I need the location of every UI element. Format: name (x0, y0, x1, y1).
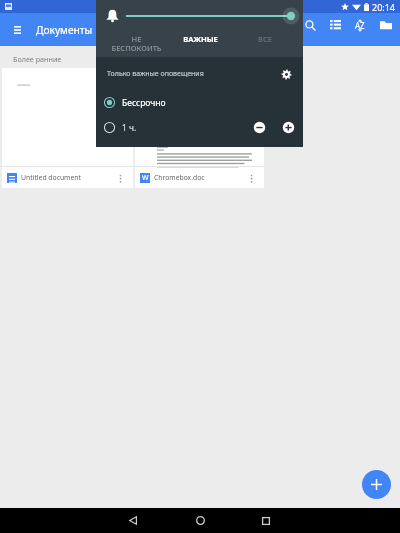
button[interactable]: Ещё (245, 172, 257, 184)
button[interactable]: Untitled document (2, 68, 133, 188)
staticText: Только важные оповещения (107, 69, 204, 79)
staticText: ВАЖНЫЕ (183, 34, 218, 44)
staticText: W (142, 173, 149, 183)
staticText: 20:14 (372, 1, 396, 13)
button[interactable]: W (135, 68, 264, 188)
button[interactable]: Папки (374, 13, 398, 37)
button[interactable]: Главный экран (185, 508, 215, 533)
button[interactable]: Меню (5, 18, 29, 42)
button[interactable]: Уменьшить время (253, 121, 266, 134)
staticText: ВСЕ (258, 34, 272, 44)
button[interactable]: Настройки (278, 66, 294, 82)
button[interactable]: ВСЕ (235, 32, 295, 57)
button[interactable]: Создать (362, 470, 391, 499)
button[interactable]: Поиск (298, 13, 322, 37)
button[interactable]: Обзор (251, 508, 281, 533)
staticText: НЕ БЕСПОКОИТЬ (111, 34, 162, 53)
button[interactable]: ВАЖНЫЕ (170, 32, 230, 57)
staticText: Chromebox.doc (154, 173, 205, 182)
button[interactable]: Ещё (114, 172, 126, 184)
button[interactable]: Увеличить время (282, 121, 295, 134)
staticText: AZ (355, 20, 365, 31)
staticText: Untitled document (21, 173, 81, 182)
button[interactable]: НЕ БЕСПОКОИТЬ (106, 32, 166, 57)
staticText: Бессрочно (122, 97, 166, 109)
staticText: 1 ч. (122, 122, 137, 134)
staticText: Более ранние (13, 54, 62, 64)
button[interactable]: Назад (118, 508, 148, 533)
button[interactable]: Сортировка (348, 13, 372, 37)
staticText: Документы (36, 23, 93, 37)
button[interactable]: Вид списка (323, 13, 347, 37)
